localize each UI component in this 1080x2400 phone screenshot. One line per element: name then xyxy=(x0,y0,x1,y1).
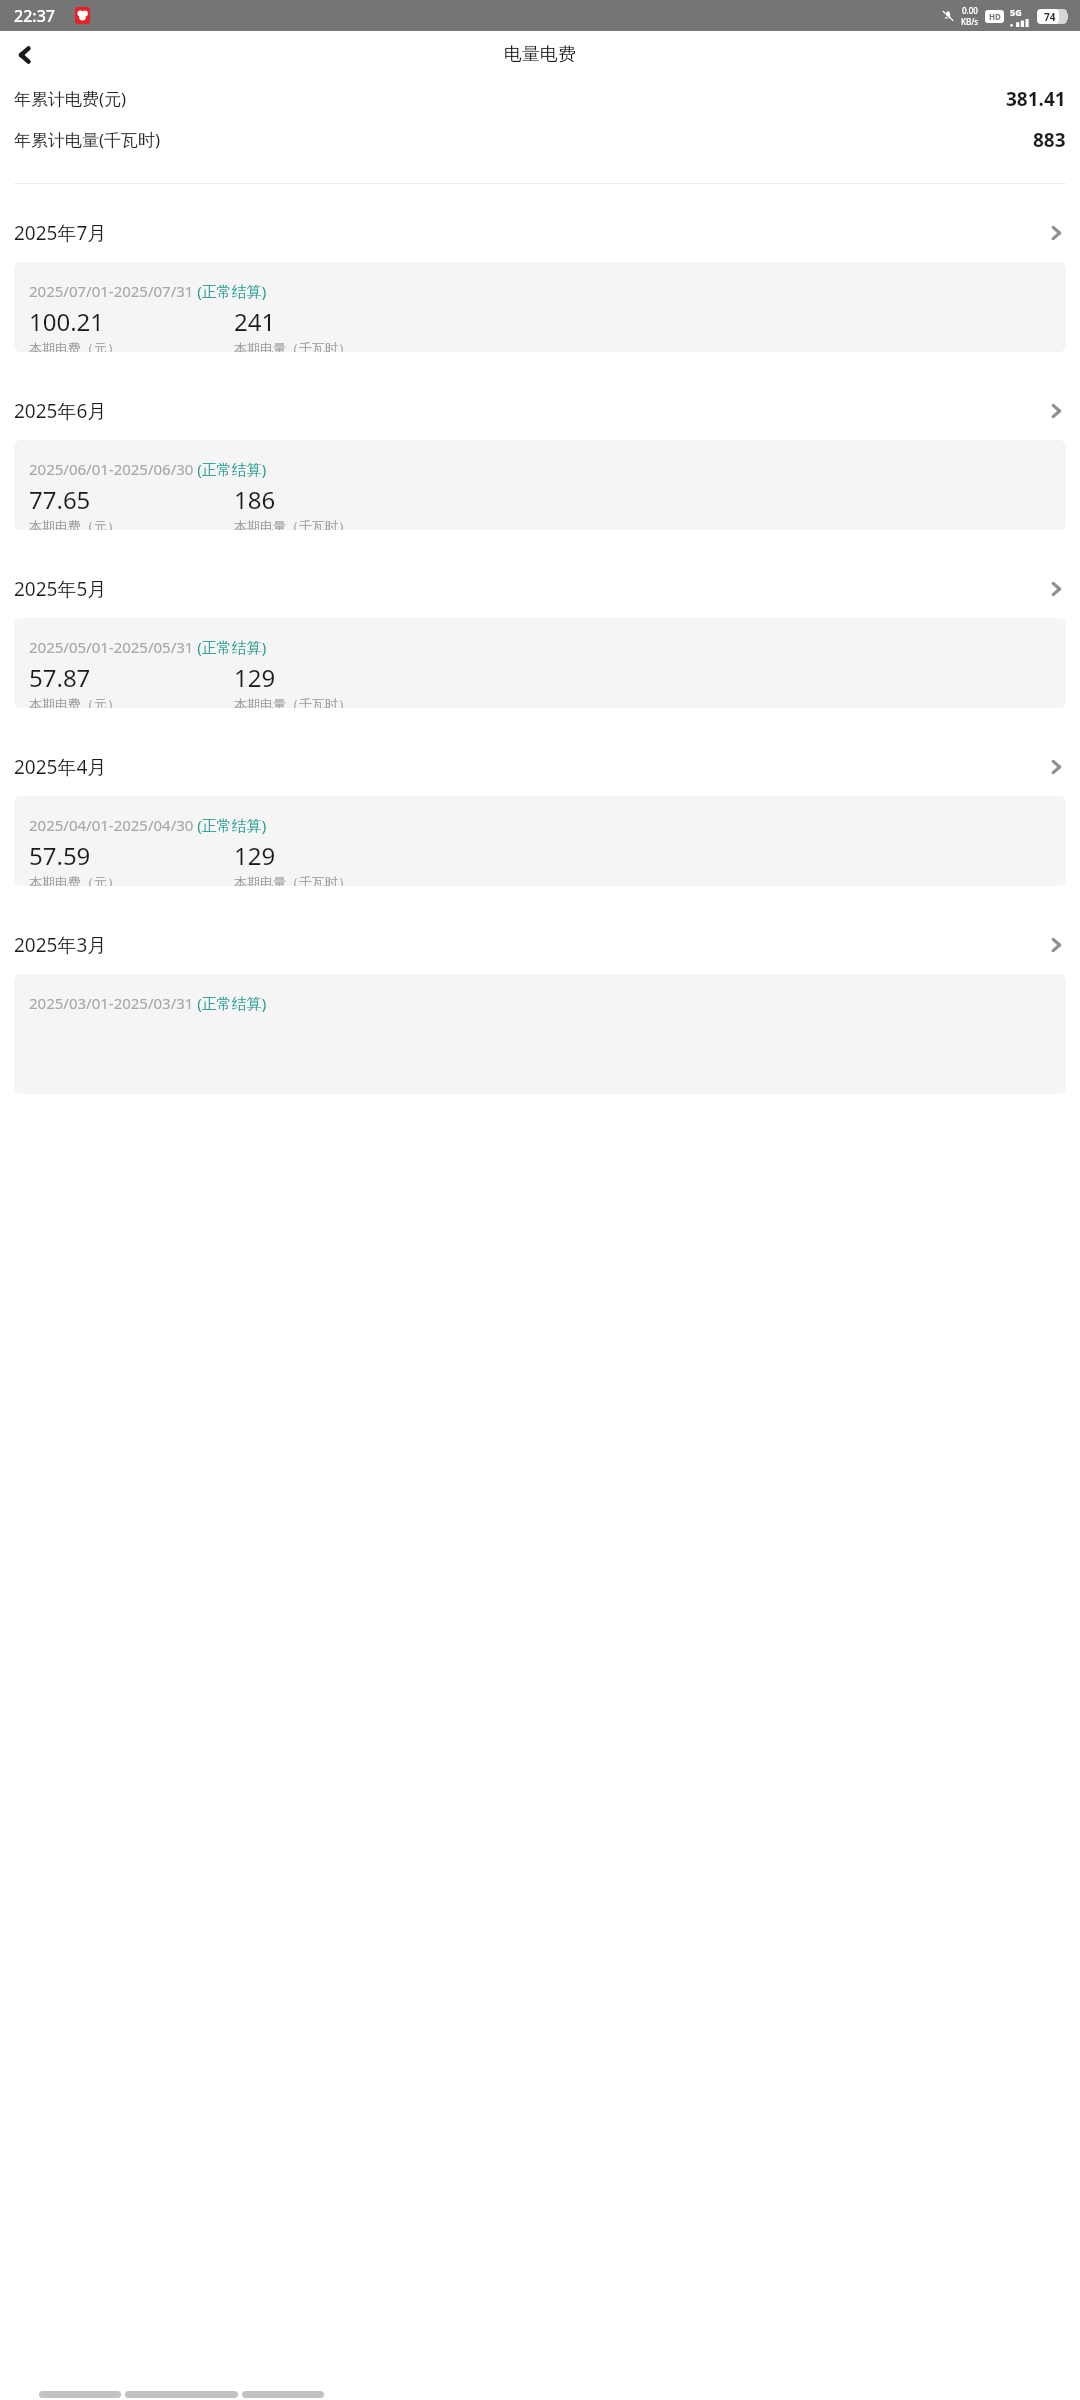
staticText: 2025/07/01-2025/07/31 (正常结算) xyxy=(29,281,267,301)
staticText: 本期电费（元） xyxy=(29,874,120,886)
staticText: 5G xyxy=(1010,6,1022,18)
button[interactable]: 2025年7月 xyxy=(0,213,1080,253)
staticText: 0.00 xyxy=(962,5,978,16)
staticText: KB/s xyxy=(961,16,979,27)
button[interactable]: Back xyxy=(242,2391,324,2398)
staticText: 年累计电量(千瓦时) xyxy=(14,128,161,151)
button[interactable]: 2025/03/01-2025/03/31 (正常结算) xyxy=(14,974,1066,1094)
button[interactable]: 2025年3月 xyxy=(0,925,1080,965)
button[interactable]: Back xyxy=(0,31,50,78)
staticText: 57.87 xyxy=(29,661,91,694)
button[interactable]: 2025年5月 xyxy=(0,569,1080,609)
staticText: 2025年5月 xyxy=(14,576,107,602)
staticText: 本期电费（元） xyxy=(29,518,120,530)
staticText: 本期电量（千瓦时） xyxy=(234,518,351,530)
staticText: 57.59 xyxy=(29,839,91,872)
staticText: 本期电费（元） xyxy=(29,696,120,708)
staticText: 2025年6月 xyxy=(14,398,107,424)
staticText: 129 xyxy=(234,839,276,872)
staticText: 883 xyxy=(1033,127,1066,153)
staticText: 本期电费（元） xyxy=(29,340,120,352)
staticText: 2025/03/01-2025/03/31 (正常结算) xyxy=(29,993,267,1013)
staticText: HD xyxy=(989,11,1001,22)
staticText: 2025/04/01-2025/04/30 (正常结算) xyxy=(29,815,267,835)
staticText: 2025年7月 xyxy=(14,220,107,246)
staticText: 本期电量（千瓦时） xyxy=(234,340,351,352)
button[interactable]: Home xyxy=(125,2391,238,2398)
button[interactable]: Recents xyxy=(39,2391,121,2398)
staticText: 电量电费 xyxy=(504,43,576,66)
button[interactable]: 2025/07/01-2025/07/31 (正常结算) xyxy=(14,262,1066,352)
staticText: 77.65 xyxy=(29,483,91,516)
staticText: 本期电量（千瓦时） xyxy=(234,696,351,708)
staticText: 74 xyxy=(1044,10,1056,24)
staticText: 381.41 xyxy=(1006,86,1066,112)
button[interactable]: 年累计电量(千瓦时) xyxy=(0,119,1080,160)
staticText: 186 xyxy=(234,483,276,516)
staticText: 241 xyxy=(234,305,276,338)
button[interactable]: 2025/05/01-2025/05/31 (正常结算) xyxy=(14,618,1066,708)
staticText: 2025年3月 xyxy=(14,932,107,958)
staticText: 22:37 xyxy=(14,5,55,27)
button[interactable]: 2025/04/01-2025/04/30 (正常结算) xyxy=(14,796,1066,886)
button[interactable]: 2025年4月 xyxy=(0,747,1080,787)
staticText: 2025/06/01-2025/06/30 (正常结算) xyxy=(29,459,267,479)
button[interactable]: 2025年6月 xyxy=(0,391,1080,431)
staticText: 年累计电费(元) xyxy=(14,87,127,110)
button[interactable]: 年累计电费(元) xyxy=(0,78,1080,119)
staticText: 100.21 xyxy=(29,305,105,338)
staticText: 本期电量（千瓦时） xyxy=(234,874,351,886)
button[interactable]: 2025/06/01-2025/06/30 (正常结算) xyxy=(14,440,1066,530)
staticText: 2025年4月 xyxy=(14,754,107,780)
staticText: 2025/05/01-2025/05/31 (正常结算) xyxy=(29,637,267,657)
staticText: 129 xyxy=(234,661,276,694)
